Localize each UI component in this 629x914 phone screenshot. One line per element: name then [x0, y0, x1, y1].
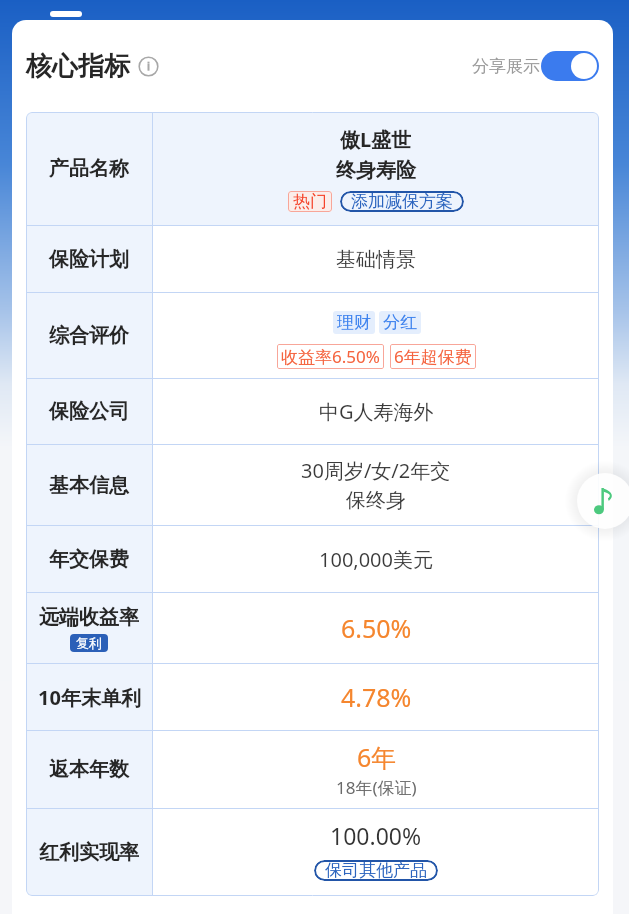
staticText: 100.00%	[330, 820, 422, 851]
button[interactable]: 10年末单利	[26, 664, 152, 730]
staticText: 6.50%	[341, 611, 412, 645]
button[interactable]: 产品名称	[26, 112, 152, 225]
staticText: 远端收益率	[39, 605, 139, 630]
staticText: 保险计划	[49, 247, 129, 272]
button[interactable]: 添加减保方案	[340, 191, 464, 212]
staticText: 保险公司	[49, 399, 129, 424]
button[interactable]: 基本信息	[26, 445, 152, 525]
staticText: 基本信息	[49, 473, 129, 498]
button[interactable]: 远端收益率	[26, 593, 152, 663]
staticText: 年交保费	[49, 547, 129, 572]
staticText: 基础情景	[336, 247, 416, 272]
staticText: 傲L盛世	[340, 126, 412, 153]
staticText: 终身寿险	[336, 158, 416, 183]
button[interactable]: 综合评价	[26, 293, 152, 378]
staticText: 红利实现率	[39, 840, 139, 865]
button[interactable]: 6年超保费	[390, 344, 476, 369]
staticText: 100,000美元	[319, 546, 433, 573]
staticText: 核心指标	[26, 50, 130, 83]
staticText: 分红	[383, 312, 417, 333]
button[interactable]: 收益率6.50%	[277, 344, 384, 369]
staticText: 分享展示	[472, 56, 540, 77]
staticText: 10年末单利	[38, 684, 141, 711]
button[interactable]: 年交保费	[26, 526, 152, 592]
button[interactable]: 保险计划	[26, 226, 152, 292]
staticText: 保司其他产品	[325, 860, 427, 881]
button[interactable]: 保险公司	[26, 379, 152, 444]
staticText: 6年超保费	[394, 345, 472, 368]
staticText: 保终身	[346, 488, 406, 513]
staticText: 热门	[293, 191, 327, 212]
staticText: 理财	[337, 312, 371, 333]
staticText: 30周岁/女/2年交	[301, 457, 451, 484]
staticText: 添加减保方案	[351, 191, 453, 212]
staticText: 18年(保证)	[336, 776, 417, 799]
staticText: 6年	[357, 740, 397, 774]
staticText: 4.78%	[341, 680, 412, 714]
staticText: 收益率6.50%	[281, 345, 380, 368]
staticText: 产品名称	[49, 156, 129, 181]
staticText: 复利	[76, 635, 102, 651]
button[interactable]: 热门	[288, 191, 332, 212]
staticText: 综合评价	[49, 323, 129, 348]
staticText: 中G人寿海外	[319, 398, 434, 425]
button[interactable]: 返本年数	[26, 731, 152, 808]
button[interactable]: Play music	[577, 473, 629, 529]
button[interactable]: Info	[138, 56, 159, 77]
staticText: 返本年数	[49, 757, 129, 782]
button[interactable]: Share toggle	[541, 51, 599, 81]
button[interactable]: 红利实现率	[26, 809, 152, 896]
button[interactable]: 保司其他产品	[314, 860, 438, 881]
